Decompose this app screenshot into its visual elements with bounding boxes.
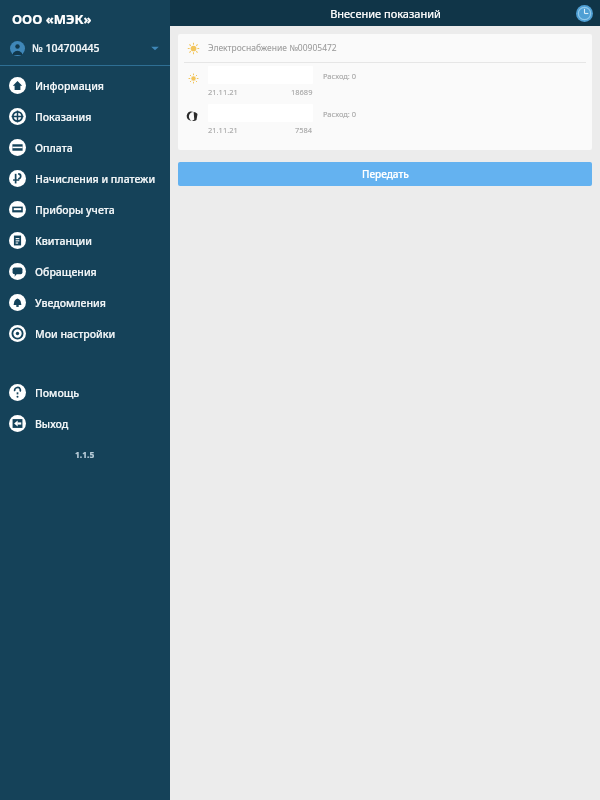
staticText: Показания — [35, 110, 92, 124]
staticText: Внесение показаний — [330, 6, 441, 21]
staticText: Помощь — [35, 386, 80, 400]
staticText: Квитанции — [35, 234, 92, 248]
button[interactable]: Передать — [178, 162, 592, 186]
button[interactable]: Помощь — [0, 377, 170, 408]
button[interactable]: Обращения — [0, 256, 170, 287]
button[interactable]: Информация — [0, 70, 170, 101]
button[interactable]: Мои настройки — [0, 318, 170, 349]
staticText: Оплата — [35, 141, 73, 155]
button[interactable]: Электроснабжение №00905472 — [178, 34, 592, 62]
button[interactable]: Уведомления — [0, 287, 170, 318]
button[interactable]: Начисления и платежи — [0, 163, 170, 194]
staticText: Начисления и платежи — [35, 172, 156, 186]
staticText: Передать — [362, 167, 409, 181]
button[interactable]: Квитанции — [0, 225, 170, 256]
staticText: Электроснабжение №00905472 — [208, 42, 337, 54]
button[interactable]: Оплата — [0, 132, 170, 163]
staticText: 1.1.5 — [75, 449, 95, 461]
staticText: 21.11.21 — [208, 125, 238, 135]
button[interactable]: Показания — [0, 101, 170, 132]
button[interactable]: История показаний — [576, 5, 593, 22]
button[interactable]: Выход — [0, 408, 170, 439]
staticText: Мои настройки — [35, 327, 116, 341]
button[interactable]: Приборы учета — [0, 194, 170, 225]
staticText: Обращения — [35, 265, 97, 279]
staticText: Информация — [35, 79, 104, 93]
staticText: 18689 — [291, 87, 313, 97]
staticText: Приборы учета — [35, 203, 115, 217]
staticText: Выход — [35, 417, 69, 431]
staticText: 21.11.21 — [208, 87, 238, 97]
staticText: № 104700445 — [32, 41, 150, 55]
staticText: Расход: 0 — [323, 71, 357, 81]
staticText: Уведомления — [35, 296, 106, 310]
button[interactable]: № 104700445 — [0, 34, 170, 62]
staticText: ООО «МЭК» — [12, 10, 92, 28]
staticText: Расход: 0 — [323, 109, 357, 119]
staticText: 7584 — [295, 125, 313, 135]
